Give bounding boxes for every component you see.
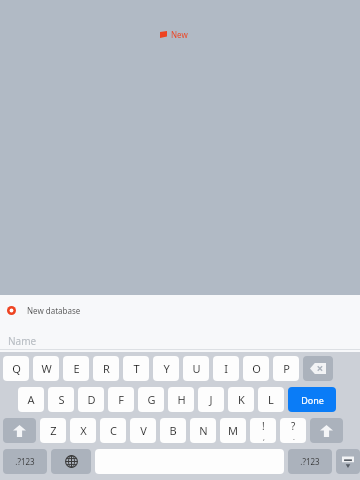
button[interactable]: O xyxy=(243,356,269,381)
staticText: E xyxy=(73,361,80,376)
button[interactable]: U xyxy=(183,356,209,381)
button[interactable]: ! xyxy=(250,418,276,443)
button[interactable]: T xyxy=(123,356,149,381)
button[interactable]: C xyxy=(100,418,126,443)
button[interactable]: P xyxy=(273,356,299,381)
button[interactable]: Y xyxy=(153,356,179,381)
button[interactable]: D xyxy=(78,387,104,412)
staticText: H xyxy=(177,392,186,407)
staticText: I xyxy=(224,361,228,376)
staticText: O xyxy=(252,361,261,376)
staticText: D xyxy=(87,392,96,407)
button[interactable]: E xyxy=(63,356,89,381)
button[interactable]: H xyxy=(168,387,194,412)
staticText: L xyxy=(268,392,274,407)
button[interactable]: Shift xyxy=(3,418,36,443)
button[interactable]: .?123 xyxy=(3,449,47,474)
staticText: Done xyxy=(301,394,324,406)
button[interactable]: M xyxy=(220,418,246,443)
button[interactable]: S xyxy=(48,387,74,412)
staticText: Name xyxy=(8,334,37,348)
button[interactable]: N xyxy=(190,418,216,443)
staticText: V xyxy=(140,423,147,438)
button[interactable]: Hide keyboard xyxy=(336,449,360,474)
staticText: K xyxy=(238,392,245,407)
button[interactable]: Q xyxy=(3,356,29,381)
staticText: Z xyxy=(50,423,57,438)
staticText: .?123 xyxy=(15,456,35,467)
staticText: U xyxy=(192,361,201,376)
staticText: R xyxy=(103,361,110,376)
button[interactable]: G xyxy=(138,387,164,412)
staticText: ! xyxy=(262,419,265,433)
button[interactable]: Done xyxy=(288,387,336,412)
staticText: M xyxy=(228,423,238,438)
staticText: ? xyxy=(291,419,296,433)
staticText: C xyxy=(110,423,117,438)
button[interactable]: New database xyxy=(0,301,360,319)
button[interactable]: Shift xyxy=(310,418,343,443)
staticText: B xyxy=(169,423,177,438)
staticText: Y xyxy=(163,361,170,376)
staticText: S xyxy=(58,392,65,407)
button[interactable]: Backspace xyxy=(303,356,333,381)
button[interactable]: Change keyboard xyxy=(51,449,91,474)
staticText: , xyxy=(263,433,265,443)
button[interactable]: R xyxy=(93,356,119,381)
staticText: .?123 xyxy=(300,456,320,467)
staticText: P xyxy=(283,361,290,376)
staticText: F xyxy=(118,392,124,407)
staticText: A xyxy=(27,392,35,407)
button[interactable]: New xyxy=(158,27,190,42)
button[interactable]: L xyxy=(258,387,284,412)
button[interactable]: J xyxy=(198,387,224,412)
button[interactable]: I xyxy=(213,356,239,381)
button[interactable]: W xyxy=(33,356,59,381)
button[interactable]: K xyxy=(228,387,254,412)
staticText: New database xyxy=(27,305,81,316)
button[interactable]: Name xyxy=(0,332,360,349)
button[interactable]: X xyxy=(70,418,96,443)
staticText: J xyxy=(209,392,213,407)
staticText: New xyxy=(171,29,188,40)
button[interactable]: .?123 xyxy=(288,449,332,474)
staticText: T xyxy=(133,361,140,376)
button[interactable]: F xyxy=(108,387,134,412)
button[interactable]: ? xyxy=(280,418,306,443)
button[interactable]: A xyxy=(18,387,44,412)
staticText: W xyxy=(41,361,52,376)
staticText: N xyxy=(199,423,208,438)
staticText: X xyxy=(80,423,87,438)
button[interactable]: V xyxy=(130,418,156,443)
button[interactable]: B xyxy=(160,418,186,443)
staticText: Q xyxy=(12,361,21,376)
button[interactable]: Z xyxy=(40,418,66,443)
staticText: G xyxy=(147,392,156,407)
staticText: . xyxy=(293,433,295,443)
